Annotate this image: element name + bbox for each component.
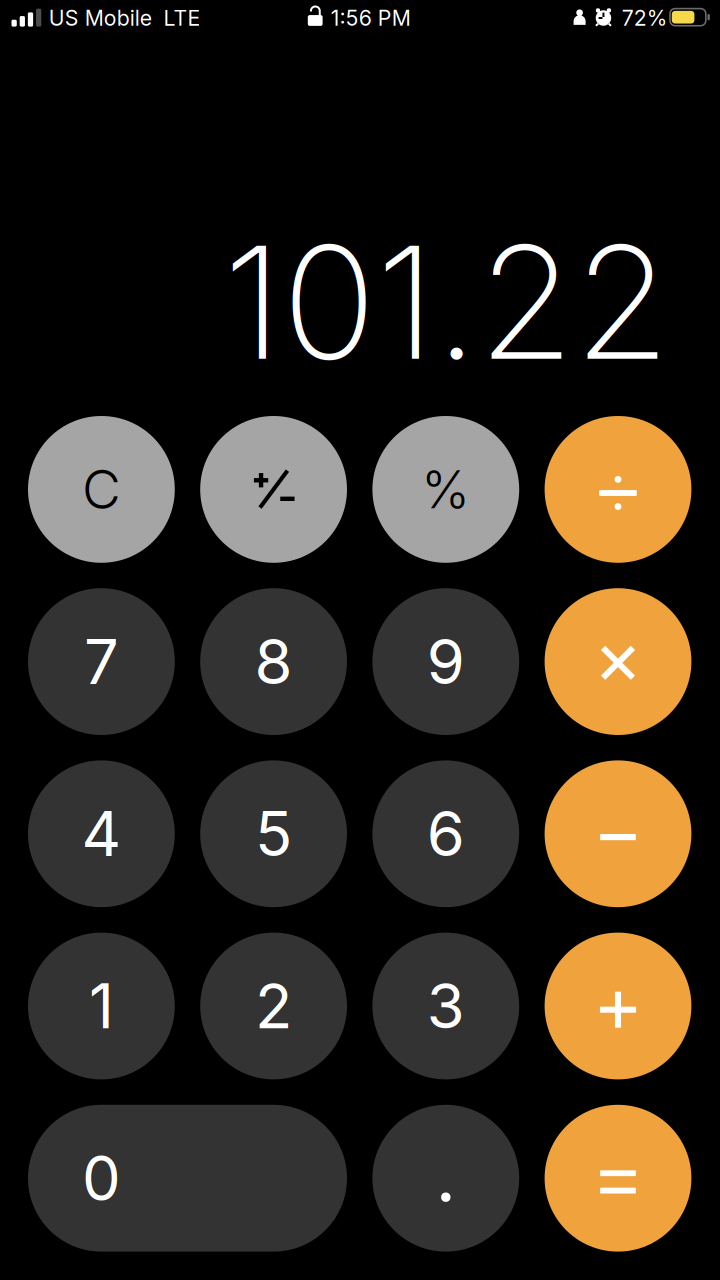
button[interactable]: Minus	[545, 760, 691, 907]
button[interactable]: 0	[28, 1105, 347, 1252]
staticText: 1	[89, 969, 114, 1043]
button[interactable]: %	[372, 416, 519, 563]
staticText: 0	[82, 1141, 121, 1215]
button[interactable]: 9	[372, 588, 519, 735]
staticText: LTE	[163, 5, 200, 31]
button[interactable]: Decimal point	[372, 1105, 519, 1252]
button[interactable]: 4	[28, 760, 175, 907]
staticText: 2	[255, 969, 292, 1043]
staticText: US Mobile	[49, 5, 152, 31]
staticText: 1:56 PM	[331, 5, 411, 31]
button[interactable]: 7	[28, 588, 175, 735]
button[interactable]: Multiply	[545, 588, 691, 735]
button[interactable]: Divide	[545, 416, 691, 563]
button[interactable]: Equals	[545, 1105, 691, 1252]
button[interactable]: Plus minus	[200, 416, 347, 563]
button[interactable]: 5	[200, 760, 347, 907]
button[interactable]: 6	[372, 760, 519, 907]
staticText: 3	[427, 969, 465, 1043]
staticText: 9	[427, 624, 465, 699]
staticText: 72%	[622, 5, 668, 31]
button[interactable]: 2	[200, 933, 347, 1079]
staticText: 6	[427, 797, 465, 871]
button[interactable]: 3	[372, 933, 519, 1079]
button[interactable]: Plus	[545, 933, 691, 1079]
button[interactable]: 1	[28, 933, 175, 1079]
staticText: 4	[81, 797, 121, 871]
staticText: 8	[255, 624, 293, 699]
button[interactable]: 8	[200, 588, 347, 735]
staticText: %	[421, 458, 470, 521]
button[interactable]: C	[28, 416, 175, 563]
staticText: C	[82, 457, 121, 522]
staticText: 101.22	[223, 208, 670, 396]
staticText: 7	[84, 624, 119, 699]
staticText: 5	[255, 797, 292, 871]
